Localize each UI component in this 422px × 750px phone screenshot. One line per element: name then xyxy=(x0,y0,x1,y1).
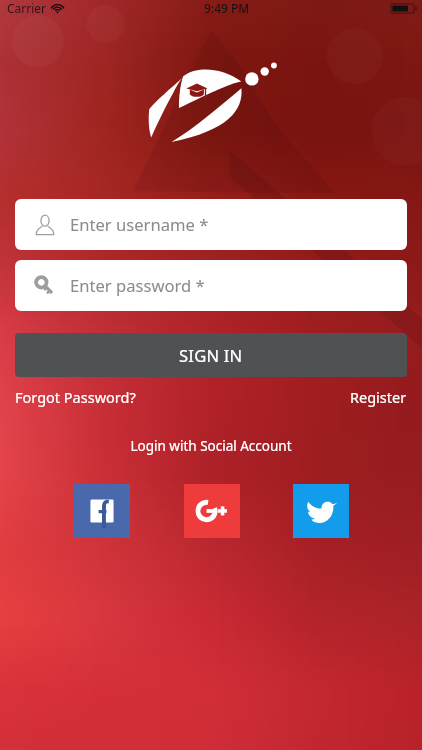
button[interactable]: Forgot Password? xyxy=(15,387,136,407)
button[interactable]: SIGN IN xyxy=(15,333,407,377)
button[interactable]: Login with Google Plus xyxy=(184,484,240,538)
staticText: Carrier xyxy=(7,0,47,16)
button[interactable]: Register xyxy=(350,387,407,407)
button[interactable]: Enter username * xyxy=(15,199,407,250)
button[interactable]: Login with Facebook xyxy=(74,484,130,538)
button[interactable]: Enter password * xyxy=(15,260,407,311)
button[interactable]: Login with Twitter xyxy=(293,484,349,538)
staticText: 9:49 PM xyxy=(204,0,250,16)
staticText: SIGN IN xyxy=(179,344,243,367)
staticText: Login with Social Account xyxy=(0,437,422,455)
staticText: Enter username * xyxy=(70,213,209,236)
staticText: Enter password * xyxy=(70,274,205,297)
